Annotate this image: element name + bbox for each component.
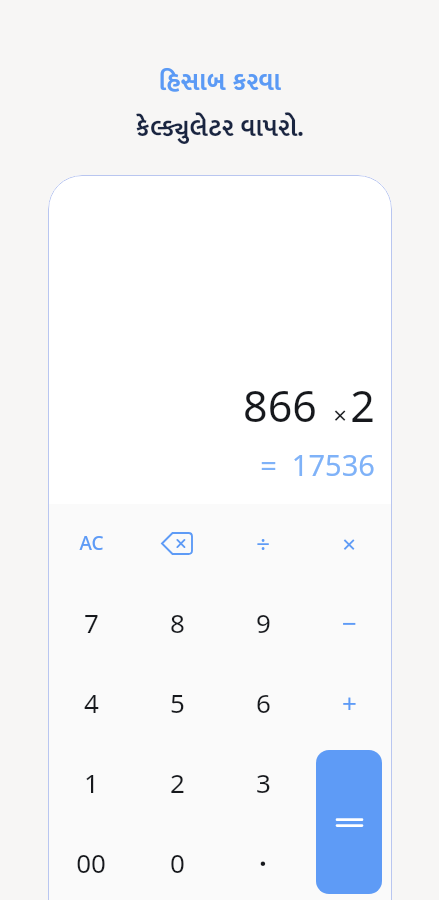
button[interactable]: 7	[48, 582, 134, 662]
staticText: ×	[342, 527, 356, 560]
staticText: ×	[333, 398, 347, 431]
staticText: −	[342, 605, 357, 640]
button[interactable]: 00	[48, 822, 134, 900]
staticText: = 17536	[260, 445, 375, 484]
staticText: 8	[170, 605, 185, 640]
staticText: 00	[76, 845, 106, 880]
staticText: 2	[350, 376, 375, 435]
button[interactable]: Decimal point	[220, 822, 306, 900]
button[interactable]: AC	[48, 504, 134, 582]
staticText: ·	[259, 845, 267, 880]
button[interactable]: Equals	[316, 750, 382, 894]
staticText: +	[342, 685, 357, 720]
staticText: હિસાબ કરવા	[158, 62, 281, 104]
button[interactable]: 2	[134, 742, 220, 822]
staticText: 5	[170, 685, 185, 720]
button[interactable]: Divide	[220, 504, 306, 582]
button[interactable]: 0	[134, 822, 220, 900]
staticText: 1	[84, 765, 99, 800]
staticText: 2	[170, 765, 185, 800]
staticText: 0	[170, 845, 185, 880]
button[interactable]: 4	[48, 662, 134, 742]
button[interactable]: 1	[48, 742, 134, 822]
staticText: AC	[79, 530, 104, 556]
button[interactable]: Minus	[306, 582, 392, 662]
button[interactable]: 8	[134, 582, 220, 662]
staticText: 7	[84, 605, 99, 640]
staticText: 4	[84, 685, 99, 720]
button[interactable]: 6	[220, 662, 306, 742]
button[interactable]: 3	[220, 742, 306, 822]
staticText: 9	[256, 605, 271, 640]
button[interactable]: Multiply	[306, 504, 392, 582]
staticText: ÷	[256, 527, 270, 560]
button[interactable]: Backspace	[134, 504, 220, 582]
staticText: 866	[243, 376, 317, 435]
staticText: 6	[256, 685, 271, 720]
staticText: કેલ્ક્યુલેટર વાપરો.	[135, 108, 304, 150]
staticText: 3	[256, 765, 271, 800]
button[interactable]: 9	[220, 582, 306, 662]
button[interactable]: Plus	[306, 662, 392, 742]
button[interactable]: 5	[134, 662, 220, 742]
